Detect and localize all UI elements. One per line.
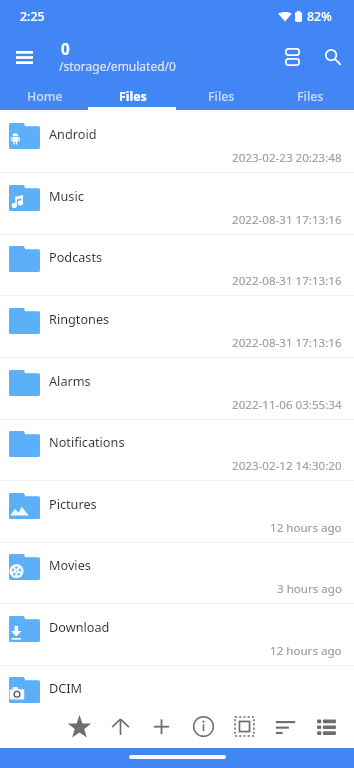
staticText: 2022-08-31 17:13:16 [232,212,342,228]
staticText: 2023-02-12 14:30:20 [232,458,342,474]
button[interactable]: Files [176,82,265,110]
staticText: Movies [49,556,91,573]
staticText: Files [119,88,147,105]
button[interactable]: List view [308,708,344,744]
button[interactable]: Add [143,708,179,744]
staticText: Music [49,187,84,204]
staticText: 2022-08-31 17:13:16 [232,273,342,289]
staticText: 82% [307,8,332,25]
staticText: Android [49,125,97,142]
staticText: /storage/emulated/0 [59,58,176,74]
button[interactable]: Alarms [0,358,354,420]
staticText: Files [208,88,235,105]
button[interactable]: Android [0,111,354,173]
staticText: Home [27,88,63,105]
button[interactable]: Download [0,604,354,666]
staticText: Download [49,618,110,635]
staticText: 2:25 [20,8,45,25]
button[interactable]: Files [88,82,176,110]
staticText: 2022-08-31 17:13:16 [232,335,342,351]
button[interactable]: Notifications [0,419,354,481]
button[interactable]: Podcasts [0,234,354,296]
button[interactable]: Upload [102,708,138,744]
button[interactable]: Home [0,82,88,110]
button[interactable]: Info [185,708,221,744]
staticText: Alarms [49,372,91,389]
staticText: Podcasts [49,248,103,265]
staticText: Files [297,88,324,105]
button[interactable]: Select all [226,708,262,744]
button[interactable]: Menu [6,39,42,75]
button[interactable]: Favorite [61,708,97,744]
staticText: 2023-02-23 20:23:48 [232,150,342,166]
staticText: DCIM [49,679,83,696]
button[interactable]: DCIM [0,665,354,727]
staticText: 12 hours ago [270,643,342,659]
button[interactable]: Movies [0,542,354,604]
staticText: 2022-11-06 03:55:34 [232,397,342,413]
button[interactable]: Music [0,173,354,235]
button[interactable]: Pictures [0,481,354,543]
staticText: 3 hours ago [277,581,342,597]
button[interactable]: Files [265,82,354,110]
staticText: Ringtones [49,310,110,327]
button[interactable]: Sort [267,708,303,744]
staticText: Notifications [49,433,125,450]
button[interactable]: Switch layout [274,39,310,75]
staticText: Pictures [49,495,97,512]
button[interactable]: Search [315,39,351,75]
staticText: 12 hours ago [270,520,342,536]
staticText: 0 [61,39,70,60]
button[interactable]: Ringtones [0,296,354,358]
